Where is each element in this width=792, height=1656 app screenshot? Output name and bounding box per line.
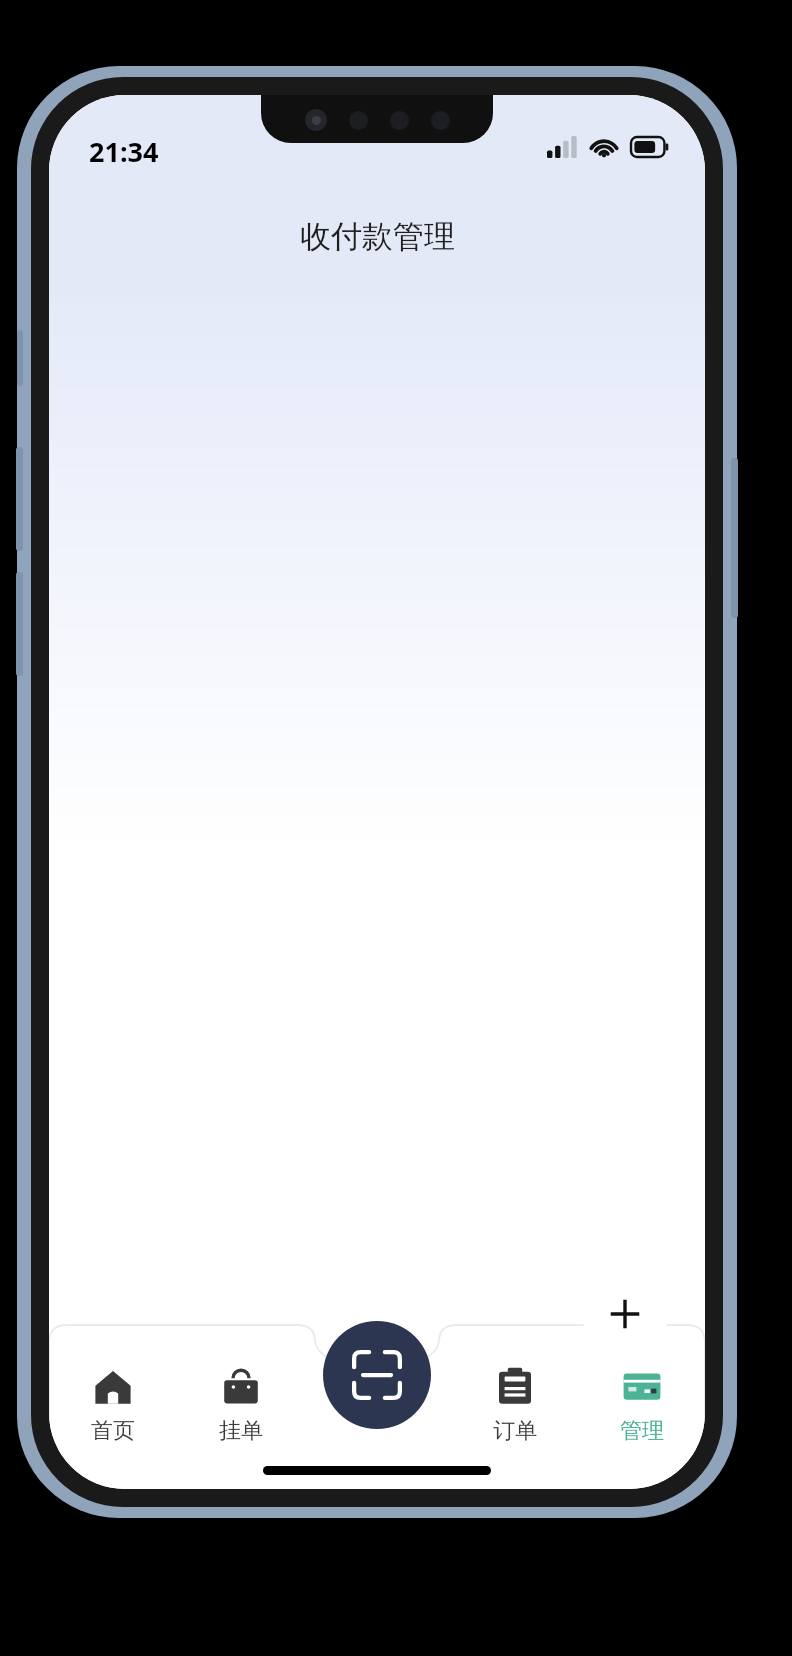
button[interactable]: Scan <box>323 1321 431 1429</box>
staticText: 管理 <box>620 1417 664 1445</box>
staticText: 首页 <box>91 1417 135 1445</box>
button[interactable]: 管理 <box>578 1333 705 1453</box>
button[interactable]: 首页 <box>49 1333 177 1453</box>
staticText: 订单 <box>493 1417 537 1445</box>
button[interactable]: 挂单 <box>177 1333 305 1453</box>
staticText: 收付款管理 <box>300 217 455 256</box>
staticText: 21:34 <box>89 133 159 170</box>
button[interactable]: Add <box>582 1271 668 1357</box>
button[interactable]: 订单 <box>451 1333 578 1453</box>
staticText: 挂单 <box>219 1417 263 1445</box>
